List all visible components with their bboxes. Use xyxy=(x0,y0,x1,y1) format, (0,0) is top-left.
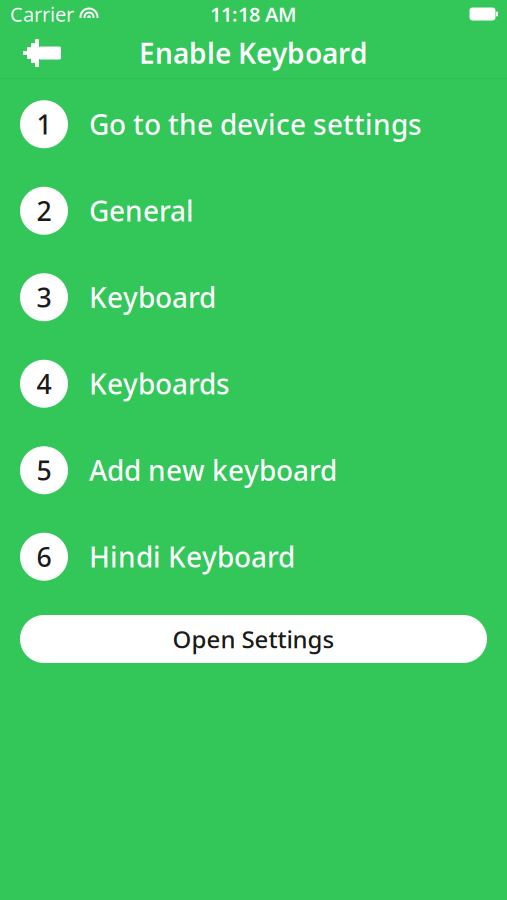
staticText: Go to the device settings xyxy=(89,106,422,143)
staticText: Enable Keyboard xyxy=(139,34,368,72)
button[interactable]: 1 xyxy=(0,81,507,167)
staticText: 11:18 AM xyxy=(210,1,297,27)
button[interactable]: 5 xyxy=(0,427,507,513)
button[interactable]: 3 xyxy=(0,254,507,340)
staticText: 4 xyxy=(36,366,51,401)
staticText: 1 xyxy=(36,106,51,142)
button[interactable]: 6 xyxy=(0,513,507,600)
staticText: Carrier xyxy=(10,1,74,27)
button[interactable]: Back xyxy=(12,28,72,78)
staticText: 5 xyxy=(36,452,51,488)
staticText: General xyxy=(89,192,194,229)
staticText: Keyboard xyxy=(89,279,216,316)
staticText: 6 xyxy=(36,539,51,574)
staticText: Keyboards xyxy=(89,365,230,402)
staticText: 3 xyxy=(36,279,51,315)
button[interactable]: Open Settings xyxy=(20,615,487,663)
button[interactable]: 2 xyxy=(0,167,507,254)
staticText: Open Settings xyxy=(172,623,334,655)
staticText: Hindi Keyboard xyxy=(89,538,295,575)
staticText: Add new keyboard xyxy=(89,452,337,489)
staticText: 2 xyxy=(36,193,51,228)
button[interactable]: 4 xyxy=(0,340,507,427)
